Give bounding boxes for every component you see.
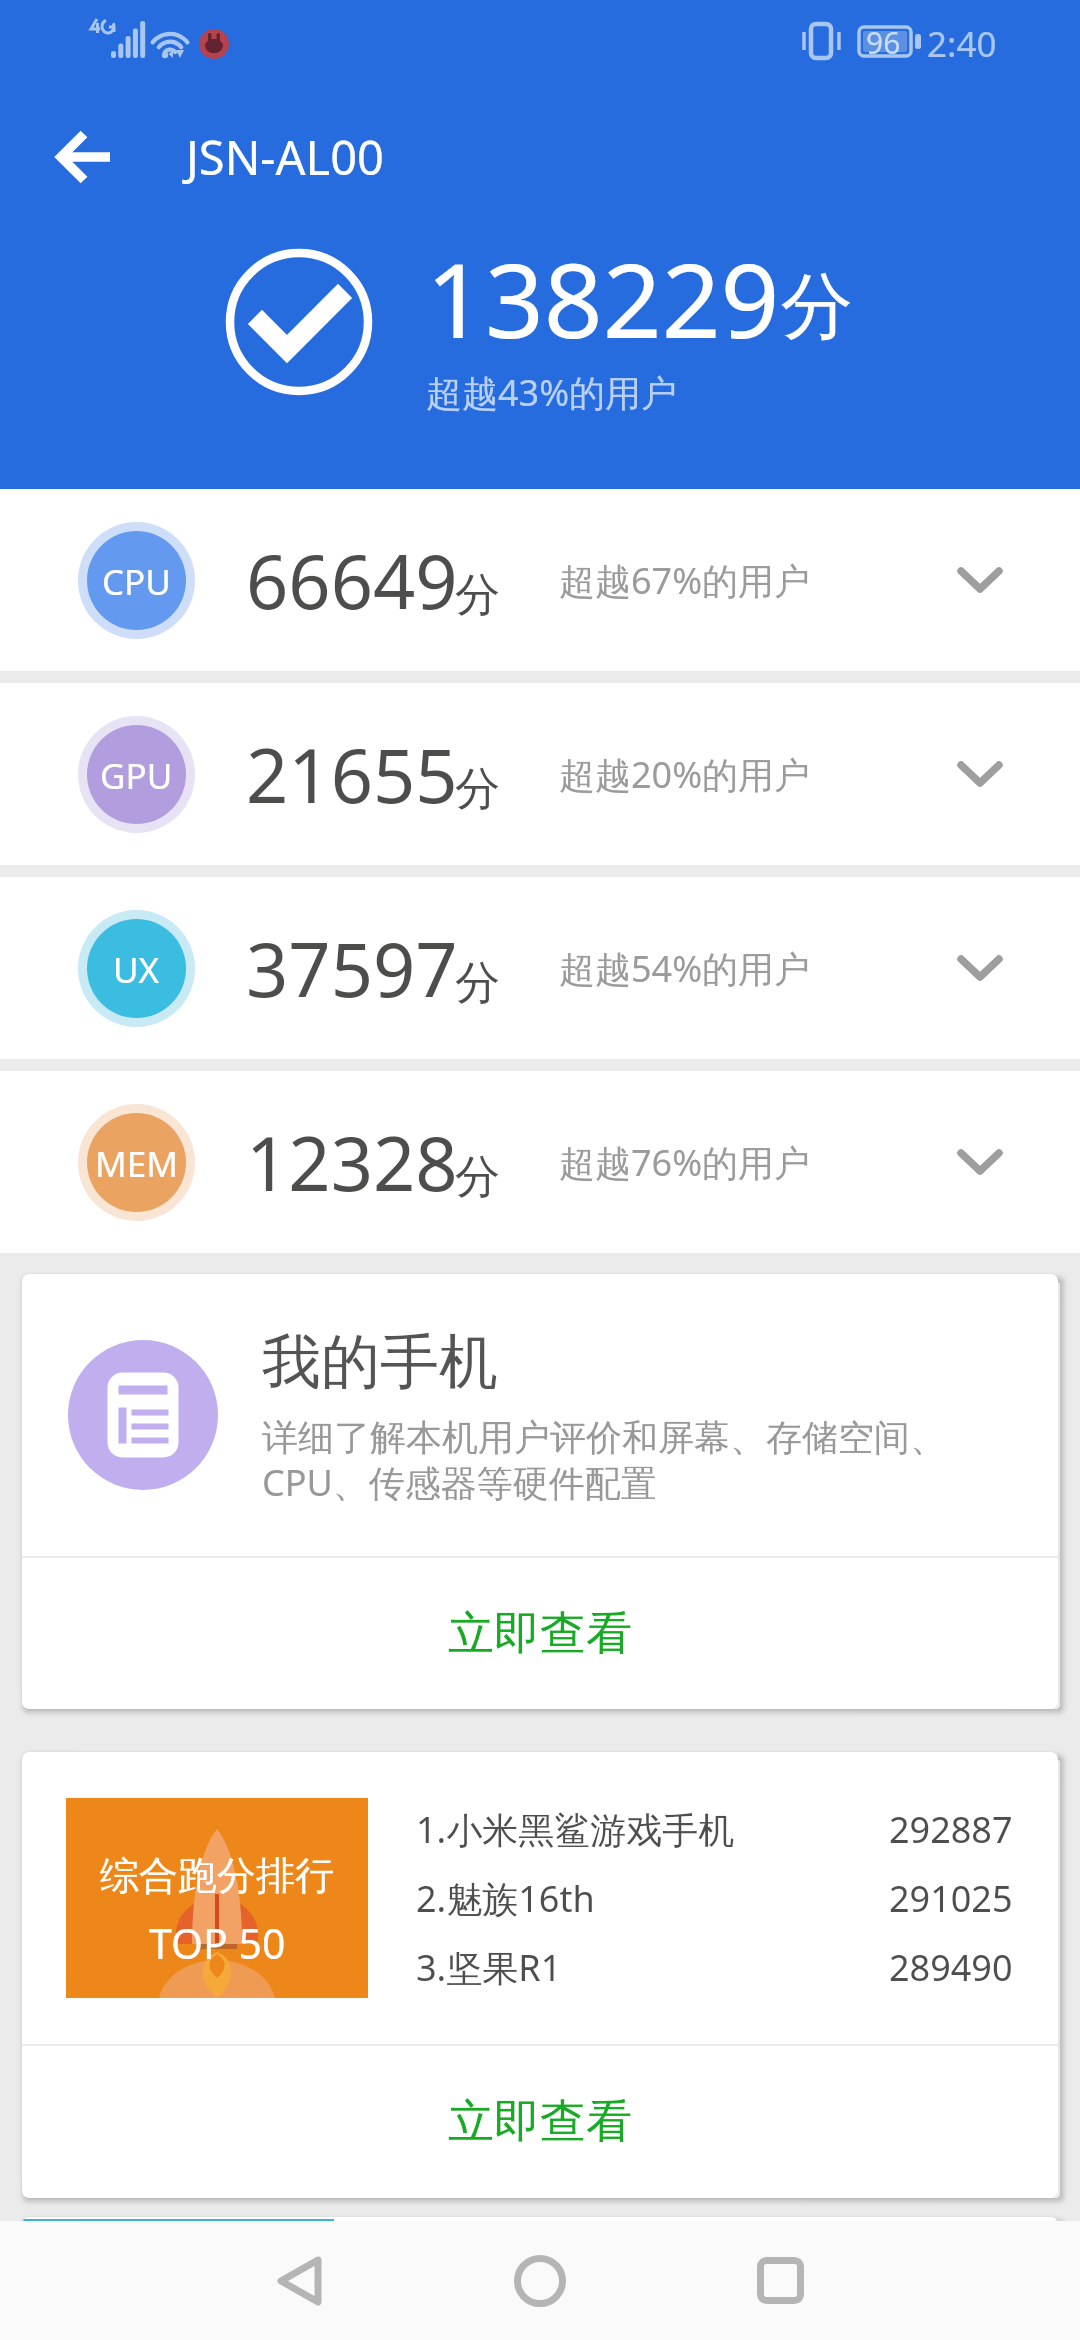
button[interactable]: GPU: [0, 683, 1080, 865]
staticText: 立即查看: [448, 1605, 632, 1663]
button[interactable]: 我的手机: [22, 1274, 1058, 1556]
staticText: 3.坚果R1: [416, 1943, 562, 1992]
staticText: 分: [455, 567, 500, 624]
staticText: 分: [455, 1149, 500, 1206]
staticText: 我的手机: [262, 1325, 498, 1399]
button[interactable]: MEM: [0, 1071, 1080, 1253]
staticText: 立即查看: [448, 2093, 632, 2151]
button[interactable]: [22, 2217, 1058, 2340]
staticText: GPU: [100, 752, 173, 800]
button[interactable]: Recents: [720, 2221, 840, 2340]
staticText: 291025: [889, 1874, 1013, 1923]
staticText: 超越20%的用户: [559, 750, 811, 799]
staticText: 292887: [889, 1805, 1013, 1854]
staticText: 37597: [246, 918, 458, 1019]
staticText: 96: [866, 22, 901, 63]
button[interactable]: 综合跑分排行: [22, 1752, 1058, 2044]
staticText: 66649: [246, 530, 458, 631]
staticText: 超越76%的用户: [559, 1138, 811, 1187]
staticText: TOP 50: [149, 1915, 286, 1971]
staticText: 2:40: [927, 20, 997, 68]
staticText: 12328: [246, 1112, 458, 1213]
staticText: MEM: [95, 1140, 178, 1188]
staticText: 289490: [889, 1943, 1013, 1992]
staticText: 分: [781, 262, 853, 353]
staticText: 2.魅族16th: [416, 1874, 595, 1923]
button[interactable]: Home: [480, 2221, 600, 2340]
button[interactable]: 立即查看: [22, 2046, 1058, 2198]
staticText: 超越43%的用户: [426, 368, 678, 417]
button[interactable]: Back: [26, 102, 142, 212]
staticText: 分: [455, 955, 500, 1012]
staticText: 1.小米黑鲨游戏手机: [416, 1805, 735, 1854]
button[interactable]: CPU: [0, 489, 1080, 671]
staticText: JSN-AL00: [186, 125, 384, 189]
staticText: 综合跑分排行: [100, 1851, 334, 1900]
staticText: 138229: [426, 228, 780, 368]
staticText: 21655: [246, 724, 458, 825]
staticText: 超越67%的用户: [559, 556, 811, 605]
button[interactable]: Back: [239, 2221, 359, 2340]
staticText: 详细了解本机用户评价和屏幕、存储空间、CPU、传感器等硬件配置: [262, 1415, 952, 1506]
staticText: 超越54%的用户: [559, 944, 811, 993]
staticText: 分: [455, 761, 500, 818]
staticText: UX: [113, 946, 160, 994]
button[interactable]: UX: [0, 877, 1080, 1059]
button[interactable]: 立即查看: [22, 1558, 1058, 1709]
staticText: CPU: [102, 558, 171, 606]
